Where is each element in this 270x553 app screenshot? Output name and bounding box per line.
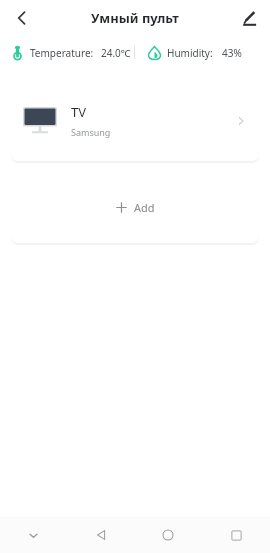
button[interactable]: Recents [202,517,270,553]
button[interactable]: TV [11,80,259,161]
button[interactable]: Hide [0,517,67,553]
button[interactable]: Add [11,172,259,243]
staticText: Samsung [71,126,111,138]
button[interactable]: Edit [234,3,264,33]
button[interactable]: Back [6,2,38,34]
staticText: TV [71,103,87,121]
staticText: 24.0℃ [101,46,131,60]
staticText: Умный пульт [91,9,179,27]
button[interactable]: Home [134,517,202,553]
staticText: Humidity: [167,46,213,60]
staticText: Temperature: [30,46,94,60]
staticText: Add [134,200,155,215]
staticText: 43% [222,46,242,60]
button[interactable]: Back [67,517,134,553]
